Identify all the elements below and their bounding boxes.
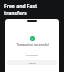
button[interactable]: Done <box>7 60 57 65</box>
staticText: Done <box>29 61 36 64</box>
staticText: Free and Fast <box>4 3 38 10</box>
staticText: Transaction successful <box>16 43 49 47</box>
staticText: successful <box>26 53 38 56</box>
staticText: transfers <box>4 10 27 17</box>
